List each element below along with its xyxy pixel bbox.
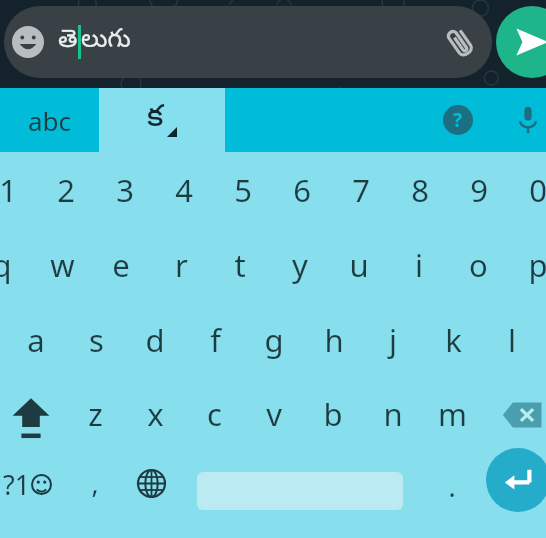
staticText: 9 [470, 169, 488, 211]
button[interactable]: Emoji [4, 6, 492, 78]
staticText: c [207, 393, 222, 435]
button[interactable]: d [125, 310, 185, 370]
button[interactable]: Backspace [492, 384, 546, 446]
button[interactable]: o [448, 235, 508, 295]
button[interactable]: g [244, 310, 304, 370]
staticText: 5 [234, 169, 252, 211]
button[interactable]: s [66, 310, 126, 370]
button[interactable]: Shift [0, 384, 62, 446]
button[interactable]: v [244, 384, 304, 444]
button[interactable]: abc [0, 88, 99, 152]
staticText: z [88, 393, 103, 435]
staticText: u [349, 244, 369, 286]
button[interactable]: k [423, 310, 483, 370]
button[interactable]: 9 [449, 160, 509, 220]
button[interactable]: 1 [0, 160, 38, 220]
staticText: w [50, 244, 75, 286]
button[interactable]: ?1 [0, 452, 70, 516]
button[interactable]: Attach [432, 14, 488, 70]
button[interactable]: Enter [486, 448, 546, 512]
button[interactable]: Emoji [6, 20, 50, 64]
button[interactable]: l [482, 310, 542, 370]
button[interactable]: 2 [36, 160, 96, 220]
staticText: 2 [57, 169, 75, 211]
button[interactable]: b [303, 384, 363, 444]
button[interactable]: . [422, 456, 482, 516]
staticText: y [292, 244, 308, 286]
staticText: k [445, 319, 462, 361]
staticText: 0 [529, 169, 546, 211]
staticText: abc [28, 103, 72, 138]
staticText: b [323, 393, 343, 435]
staticText: h [324, 319, 344, 361]
staticText: i [415, 244, 423, 286]
staticText: e [112, 244, 130, 286]
button[interactable]: Voice input [496, 88, 546, 152]
button[interactable]: u [329, 235, 389, 295]
button[interactable]: p [508, 235, 546, 295]
button[interactable]: 7 [331, 160, 391, 220]
staticText: 4 [175, 169, 193, 211]
button[interactable]: 3 [95, 160, 155, 220]
button[interactable]: i [389, 235, 449, 295]
button[interactable]: j [363, 310, 423, 370]
button[interactable]: క [99, 88, 225, 152]
staticText: లుగు [81, 25, 131, 59]
staticText: ?1 [3, 466, 31, 503]
staticText: క [147, 100, 164, 141]
staticText: 8 [411, 169, 429, 211]
staticText: j [389, 319, 397, 361]
button[interactable]: x [125, 384, 185, 444]
button[interactable]: t [210, 235, 270, 295]
button[interactable]: , [65, 452, 125, 512]
button[interactable]: c [184, 384, 244, 444]
button[interactable]: r [151, 235, 211, 295]
button[interactable]: 0 [508, 160, 546, 220]
staticText: l [508, 319, 516, 361]
button[interactable]: q [0, 235, 32, 295]
staticText: , [91, 464, 99, 501]
staticText: 6 [293, 169, 311, 211]
staticText: g [264, 319, 284, 361]
staticText: 1 [0, 169, 17, 211]
staticText: n [383, 393, 403, 435]
staticText: m [438, 393, 467, 435]
button[interactable]: Change language [122, 454, 180, 512]
button[interactable]: Help [426, 88, 490, 152]
staticText: s [89, 319, 104, 361]
staticText: a [27, 319, 45, 361]
staticText: v [266, 393, 282, 435]
staticText: x [147, 393, 164, 435]
staticText: d [145, 319, 165, 361]
staticText: 7 [352, 169, 370, 211]
staticText: q [0, 244, 12, 286]
button[interactable]: 8 [390, 160, 450, 220]
button[interactable]: e [91, 235, 151, 295]
button[interactable]: f [185, 310, 245, 370]
button[interactable]: 5 [213, 160, 273, 220]
staticText: t [234, 244, 246, 286]
button[interactable]: w [32, 235, 92, 295]
button[interactable]: a [6, 310, 66, 370]
button[interactable]: m [422, 384, 482, 444]
staticText: . [448, 468, 456, 505]
staticText: f [210, 319, 221, 361]
button[interactable]: h [304, 310, 364, 370]
button[interactable]: Send [496, 6, 546, 78]
staticText: 3 [116, 169, 134, 211]
staticText: p [528, 244, 546, 286]
staticText: ? [453, 107, 463, 133]
staticText: r [175, 244, 188, 286]
button[interactable]: 6 [272, 160, 332, 220]
staticText: o [469, 244, 488, 286]
button[interactable]: y [270, 235, 330, 295]
button[interactable]: Space [197, 472, 403, 510]
staticText: తె [58, 25, 78, 59]
button[interactable] [99, 88, 225, 152]
button[interactable]: z [65, 384, 125, 444]
button[interactable]: n [363, 384, 423, 444]
button[interactable]: 4 [154, 160, 214, 220]
